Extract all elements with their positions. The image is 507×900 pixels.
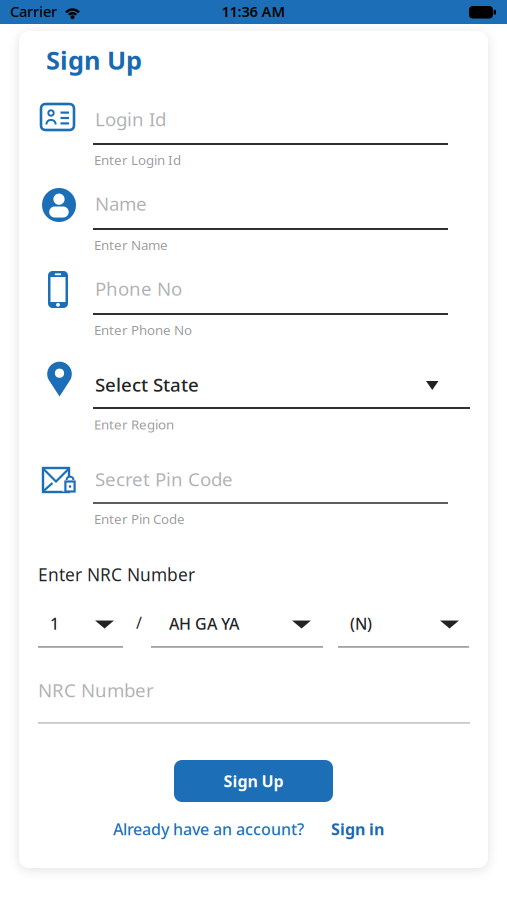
staticText: NRC Number bbox=[38, 677, 154, 702]
staticText: Sign Up bbox=[46, 43, 142, 77]
staticText: Enter NRC Number bbox=[38, 563, 195, 586]
staticText: Secret Pin Code bbox=[95, 466, 233, 491]
staticText: Enter Region bbox=[94, 415, 174, 433]
staticText: / bbox=[136, 612, 142, 633]
staticText: Phone No bbox=[95, 276, 182, 301]
staticText: 1 bbox=[50, 613, 59, 634]
staticText: Enter Login Id bbox=[94, 151, 181, 169]
staticText: Sign Up bbox=[223, 770, 283, 792]
button[interactable]: Sign Up bbox=[174, 760, 333, 802]
staticText: 11:36 AM bbox=[221, 1, 285, 21]
staticText: (N) bbox=[350, 613, 372, 634]
staticText: Carrier bbox=[10, 1, 57, 21]
staticText: Sign in bbox=[331, 818, 384, 840]
staticText: Login Id bbox=[95, 106, 166, 131]
staticText: Already have an account? bbox=[113, 818, 304, 840]
button[interactable]: AH GA YA bbox=[151, 611, 323, 635]
button[interactable]: Sign in bbox=[331, 818, 384, 840]
staticText: Enter Phone No bbox=[94, 321, 192, 339]
button[interactable]: Select State bbox=[93, 373, 470, 399]
staticText: Name bbox=[95, 191, 147, 216]
staticText: Enter Name bbox=[94, 236, 168, 254]
button[interactable]: 1 bbox=[38, 611, 123, 635]
staticText: Select State bbox=[95, 372, 199, 397]
staticText: AH GA YA bbox=[169, 613, 239, 634]
staticText: Enter Pin Code bbox=[94, 510, 185, 528]
button[interactable]: (N) bbox=[338, 611, 469, 635]
